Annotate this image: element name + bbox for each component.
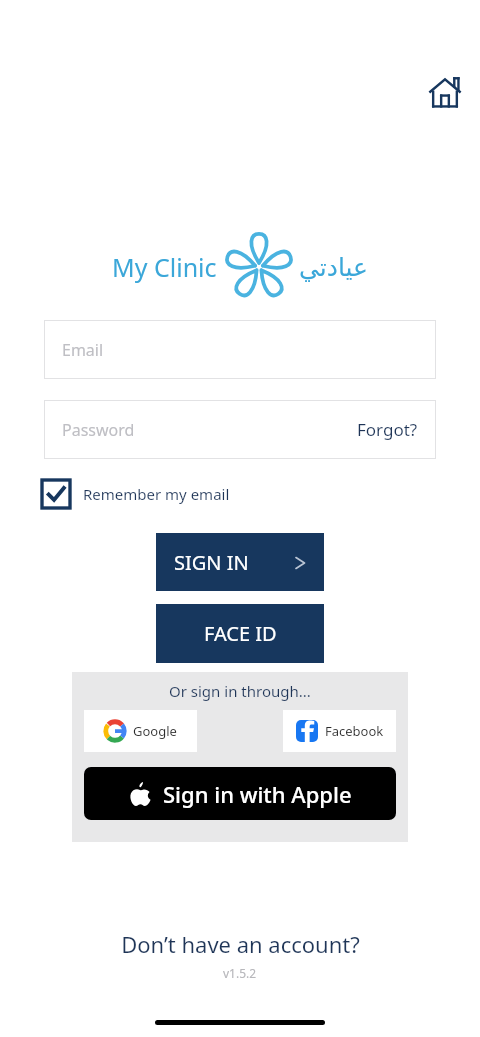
button[interactable]: Remember my email <box>42 479 230 509</box>
button[interactable]: Email <box>44 320 436 379</box>
staticText: SIGN IN <box>174 549 249 576</box>
button[interactable]: Home <box>420 68 470 118</box>
staticText: My Clinic <box>112 250 217 284</box>
staticText: v1.5.2 <box>223 965 257 981</box>
staticText: Don’t have an account? <box>121 929 360 959</box>
button[interactable]: Google <box>84 710 197 752</box>
button[interactable]: Password <box>44 400 436 459</box>
staticText: عيادتي <box>299 253 369 282</box>
button[interactable]: SIGN IN <box>156 533 324 591</box>
staticText: Forgot? <box>357 418 418 441</box>
staticText: Password <box>62 419 135 441</box>
staticText: Remember my email <box>83 484 230 504</box>
staticText: Google <box>133 722 177 740</box>
staticText: Email <box>62 339 104 361</box>
staticText: Or sign in through... <box>169 681 311 701</box>
button[interactable]: Forgot? <box>357 418 418 441</box>
staticText: Sign in with Apple <box>163 779 352 809</box>
button[interactable]: FACE ID <box>156 604 324 663</box>
staticText: Facebook <box>325 722 384 740</box>
button[interactable]: Sign in with Apple <box>84 767 396 820</box>
button[interactable]: Don’t have an account? <box>109 925 372 963</box>
button[interactable]: Facebook <box>283 710 396 752</box>
staticText: FACE ID <box>204 620 277 647</box>
